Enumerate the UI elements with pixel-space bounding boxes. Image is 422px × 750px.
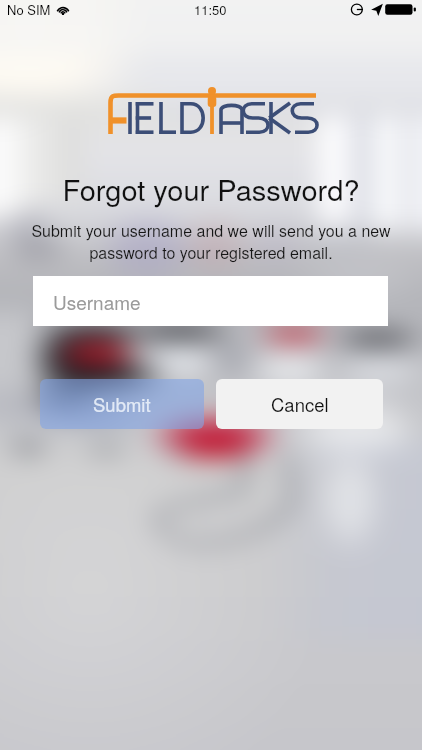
button[interactable]: Submit [40,379,204,429]
button[interactable]: Username [33,276,388,326]
staticText: Cancel [271,391,329,417]
staticText: Forgot your Password? [0,168,422,210]
staticText: Username [53,288,141,315]
staticText: Submit [93,391,151,417]
button[interactable]: Cancel [216,379,383,429]
staticText: Submit your username and we will send yo… [12,219,410,263]
staticText: No SIM [7,0,51,19]
staticText: 11:50 [194,0,227,19]
